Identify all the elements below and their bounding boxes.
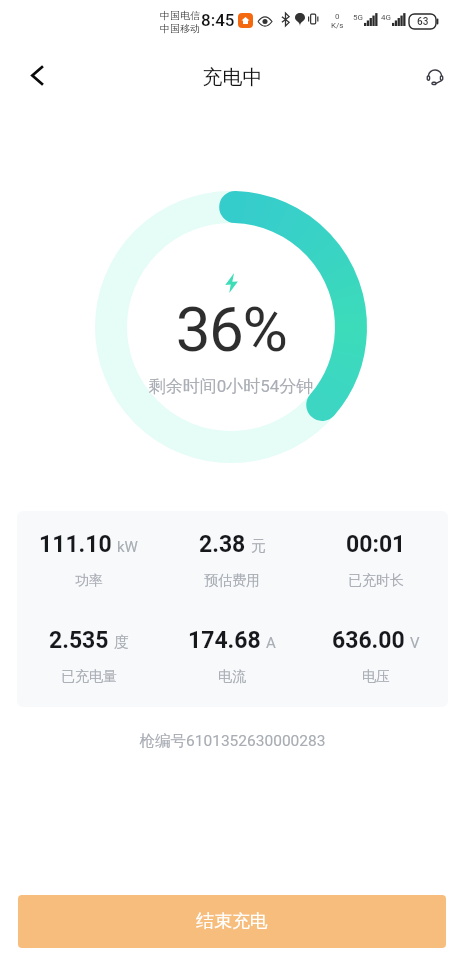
- staticText: 充电中: [0, 65, 465, 90]
- staticText: 中国移动: [160, 22, 200, 35]
- staticText: 4G: [381, 13, 391, 22]
- staticText: 8:45: [201, 10, 235, 30]
- staticText: 174.68: [188, 627, 261, 654]
- staticText: 度: [114, 633, 129, 652]
- staticText: 电压: [362, 668, 390, 686]
- staticText: 已充电量: [61, 668, 117, 686]
- staticText: 36%: [95, 293, 367, 366]
- staticText: 剩余时间0小时54分钟: [95, 376, 367, 397]
- staticText: 63: [417, 16, 429, 28]
- staticText: 111.10: [39, 531, 112, 558]
- staticText: 结束充电: [196, 910, 268, 933]
- button[interactable]: Back: [17, 55, 57, 95]
- staticText: 枪编号6101352630000283: [0, 731, 465, 751]
- staticText: 2.535: [49, 627, 109, 654]
- staticText: kW: [117, 538, 138, 556]
- staticText: 中国电信: [160, 9, 200, 22]
- staticText: 元: [251, 537, 266, 556]
- staticText: 2.38: [199, 531, 246, 558]
- staticText: 电流: [218, 668, 246, 686]
- staticText: 5G: [353, 13, 363, 22]
- staticText: V: [410, 634, 420, 652]
- staticText: 已充时长: [348, 572, 404, 590]
- staticText: A: [266, 634, 276, 652]
- button[interactable]: Customer service: [415, 56, 455, 96]
- staticText: K/s: [331, 21, 344, 30]
- staticText: 636.00: [332, 627, 405, 654]
- staticText: 00:01: [346, 531, 406, 558]
- staticText: 预估费用: [204, 572, 260, 590]
- staticText: 0: [335, 12, 340, 21]
- staticText: 功率: [75, 572, 103, 590]
- button[interactable]: 结束充电: [18, 895, 446, 948]
